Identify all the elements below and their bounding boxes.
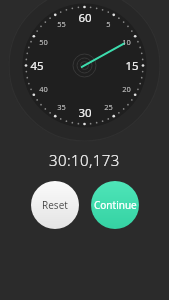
staticText: 50 [39,37,48,47]
staticText: 55 [57,19,66,29]
button[interactable]: Reset [31,181,79,229]
staticText: 60 [78,10,92,26]
staticText: 25 [104,102,113,112]
staticText: 30 [78,105,92,121]
button[interactable]: Continue [91,181,139,229]
staticText: 15 [125,58,139,74]
staticText: 20 [122,84,131,94]
staticText: 35 [57,102,66,112]
staticText: 45 [30,58,44,74]
staticText: 30:10,173 [49,150,120,170]
staticText: Continue [94,198,137,212]
staticText: 10 [122,37,131,47]
staticText: 5 [106,19,111,29]
staticText: 40 [39,84,48,94]
staticText: Reset [42,198,68,212]
